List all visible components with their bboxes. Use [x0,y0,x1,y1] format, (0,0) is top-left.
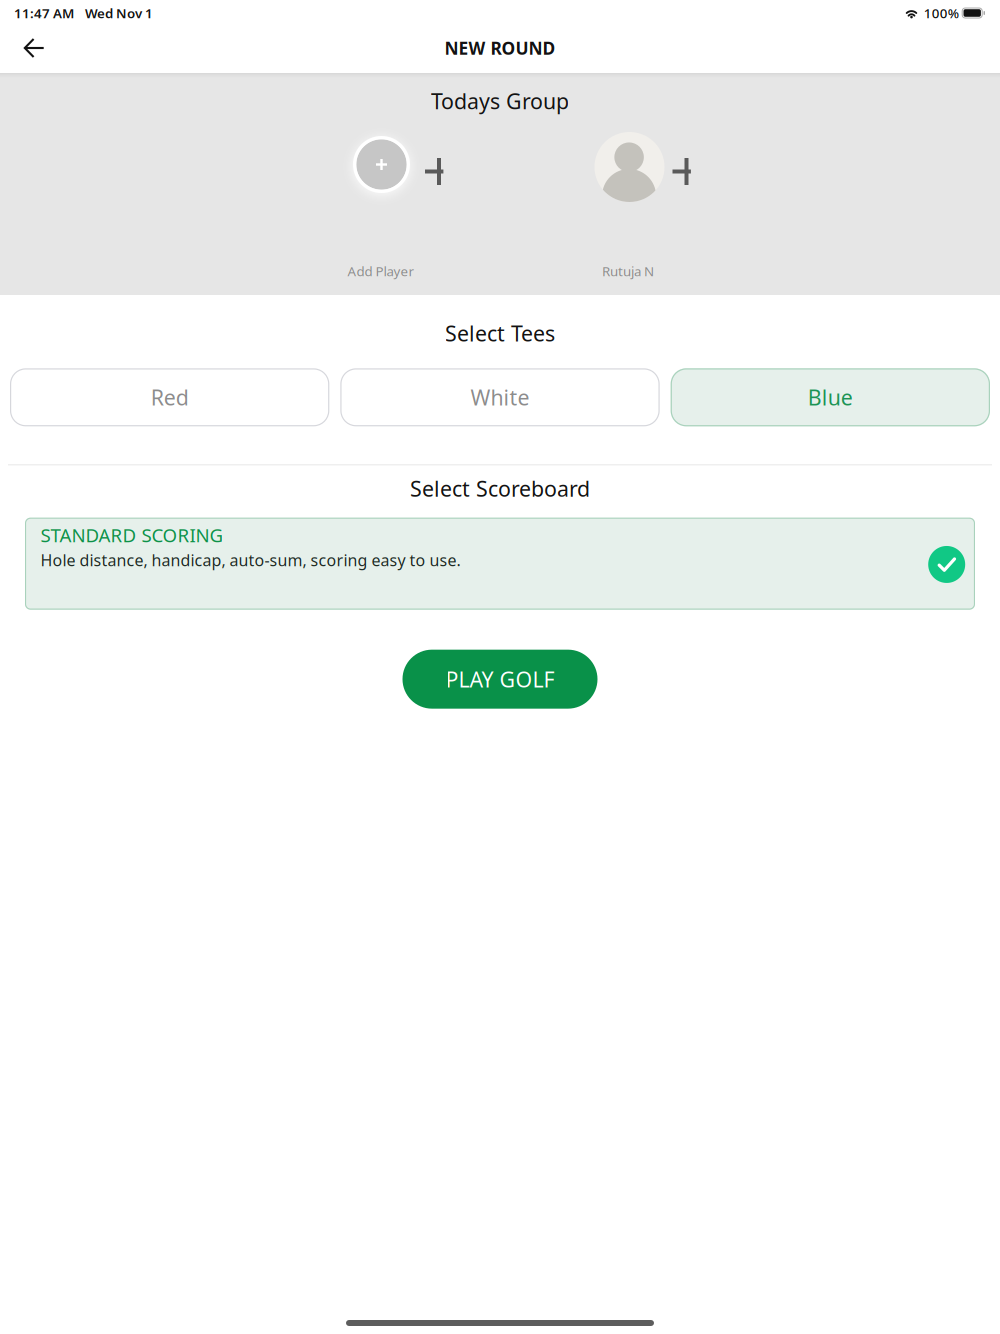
button[interactable]: Add Player [346,131,446,285]
staticText: NEW ROUND [444,36,555,59]
staticText: STANDARD SCORING [40,523,223,547]
button[interactable]: White [340,368,660,426]
button[interactable]: Blue [671,368,990,426]
staticText: Rutuja N [602,262,654,280]
button[interactable]: STANDARD SCORING [25,518,975,610]
button[interactable]: Back [0,26,68,73]
staticText: Todays Group [431,87,569,115]
button[interactable]: Red [10,368,329,426]
staticText: Wed Nov 1 [85,4,153,22]
staticText: Red [151,383,189,411]
staticText: PLAY GOLF [445,665,554,693]
staticText: Select Scoreboard [410,474,590,503]
staticText: Select Tees [445,319,555,347]
staticText: White [470,383,529,411]
staticText: Hole distance, handicap, auto-sum, scori… [40,549,460,571]
staticText: 11:47 AM [14,4,74,22]
button[interactable]: PLAY GOLF [402,650,597,709]
button[interactable]: Rutuja N [594,131,694,285]
staticText: Add Player [347,262,414,280]
staticText: Blue [808,383,853,411]
staticText: 100% [924,4,959,22]
